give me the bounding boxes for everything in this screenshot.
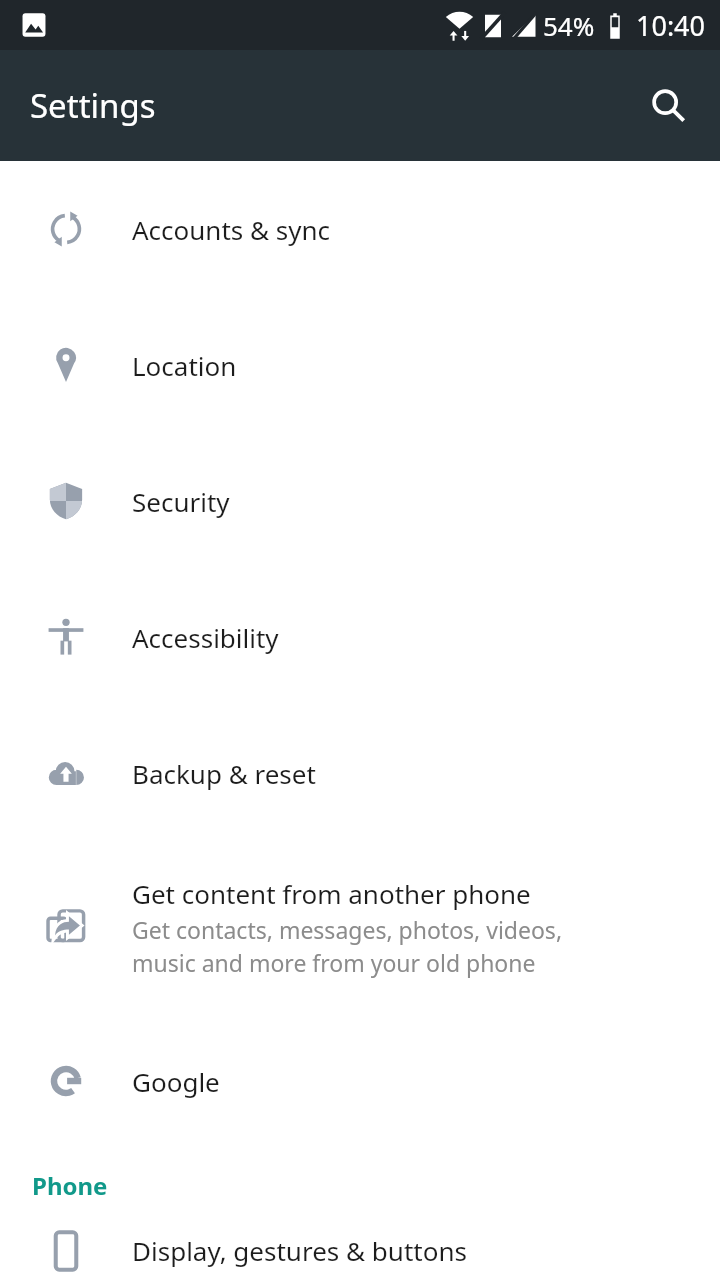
staticText: Display, gestures & buttons — [132, 1233, 467, 1268]
button[interactable]: Search — [644, 81, 694, 131]
staticText: Settings — [30, 83, 156, 128]
staticText: 10:40 — [636, 7, 706, 44]
staticText: Get contacts, messages, photos, videos, … — [132, 914, 563, 979]
staticText: Security — [132, 484, 230, 519]
staticText: Accessibility — [132, 620, 279, 655]
staticText: Location — [132, 348, 237, 383]
staticText: Get content from another phone — [132, 876, 531, 911]
button[interactable]: Backup & reset — [0, 705, 720, 841]
staticText: Phone — [32, 1169, 108, 1202]
button[interactable]: Get content from another phone — [0, 841, 720, 1013]
other: Screenshot — [18, 9, 50, 41]
button[interactable]: Google — [0, 1013, 720, 1149]
button[interactable]: Location — [0, 297, 720, 433]
staticText: Accounts & sync — [132, 212, 331, 247]
button[interactable]: Accounts & sync — [0, 161, 720, 297]
button[interactable]: Display, gestures & buttons — [0, 1221, 720, 1280]
button[interactable]: Security — [0, 433, 720, 569]
staticText: 54% — [543, 8, 595, 43]
staticText: Google — [132, 1064, 220, 1099]
staticText: Backup & reset — [132, 756, 316, 791]
button[interactable]: Accessibility — [0, 569, 720, 705]
